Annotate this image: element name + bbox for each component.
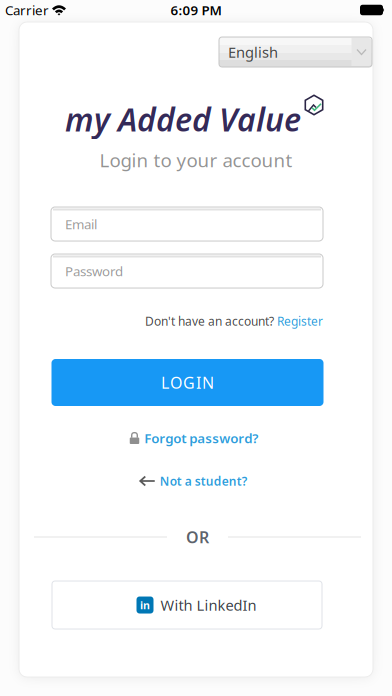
staticText: my Added Value — [65, 98, 301, 140]
staticText: Don't have an account? — [145, 313, 277, 329]
staticText: Forgot password? — [144, 429, 258, 447]
staticText: Password — [65, 262, 123, 280]
button[interactable]: in — [52, 581, 322, 629]
staticText: Not a student? — [160, 473, 248, 489]
staticText: Carrier — [5, 1, 49, 19]
button[interactable]: Password — [51, 254, 323, 288]
staticText: Register — [277, 313, 323, 329]
staticText: 6:09 PM — [170, 1, 221, 19]
button[interactable]: Email — [51, 207, 323, 241]
button[interactable]: Not a student? — [139, 473, 248, 489]
staticText: Login to your account — [99, 148, 292, 172]
button[interactable]: English — [219, 37, 372, 67]
button[interactable]: LOGIN — [51, 359, 323, 406]
staticText: With LinkedIn — [160, 595, 256, 615]
button[interactable]: Forgot password? — [130, 429, 258, 447]
staticText: Email — [65, 215, 97, 233]
staticText: OR — [186, 526, 209, 548]
button[interactable]: Register — [277, 313, 323, 329]
staticText: English — [228, 42, 278, 62]
staticText: in — [140, 598, 150, 612]
staticText: LOGIN — [161, 372, 214, 393]
